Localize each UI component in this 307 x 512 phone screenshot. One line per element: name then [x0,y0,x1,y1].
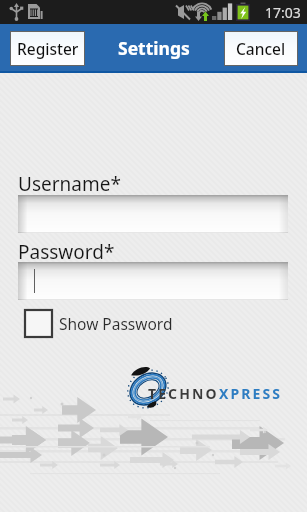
staticText: Register [17,38,79,59]
button[interactable] [18,195,288,233]
staticText: 17:03 [265,3,301,22]
staticText: Show Password [59,313,173,334]
staticText: XPRESS [219,384,283,403]
staticText: TECHNO [148,384,219,403]
staticText: Settings [118,36,190,60]
button[interactable] [18,262,288,300]
staticText: Cancel [236,38,286,59]
button[interactable]: Show Password [25,310,173,337]
staticText: Password* [18,239,115,265]
staticText: Username* [18,171,121,197]
button[interactable]: Register [11,32,84,65]
button[interactable]: Cancel [225,32,297,65]
